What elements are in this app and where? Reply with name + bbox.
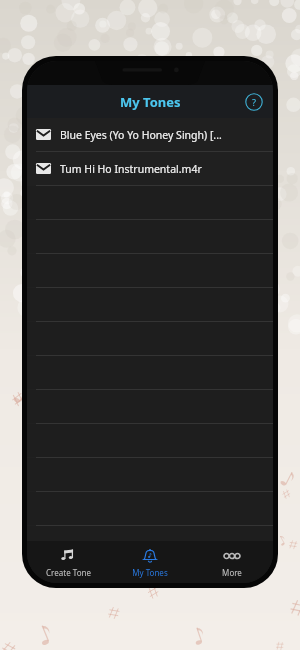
button[interactable] xyxy=(27,288,273,322)
button[interactable] xyxy=(27,492,273,526)
button[interactable]: Blue Eyes (Yo Yo Honey Singh) [... xyxy=(27,118,273,152)
button[interactable] xyxy=(27,390,273,424)
staticText: More xyxy=(222,567,242,578)
button[interactable] xyxy=(27,186,273,220)
button[interactable] xyxy=(27,220,273,254)
staticText: Blue Eyes (Yo Yo Honey Singh) [... xyxy=(60,128,267,142)
staticText: ? xyxy=(252,96,257,108)
button[interactable]: More xyxy=(191,541,273,583)
staticText: Create Tone xyxy=(46,567,91,578)
button[interactable]: Tum Hi Ho Instrumental.m4r xyxy=(27,152,273,186)
button[interactable]: Help xyxy=(245,93,263,111)
button[interactable]: My Tones xyxy=(109,541,191,583)
button[interactable]: Create Tone xyxy=(27,541,109,583)
button[interactable] xyxy=(27,458,273,492)
staticText: Tum Hi Ho Instrumental.m4r xyxy=(60,162,267,176)
staticText: My Tones xyxy=(132,567,168,578)
button[interactable] xyxy=(27,322,273,356)
button[interactable] xyxy=(27,254,273,288)
button[interactable] xyxy=(27,356,273,390)
staticText: My Tones xyxy=(120,93,181,111)
button[interactable] xyxy=(27,424,273,458)
